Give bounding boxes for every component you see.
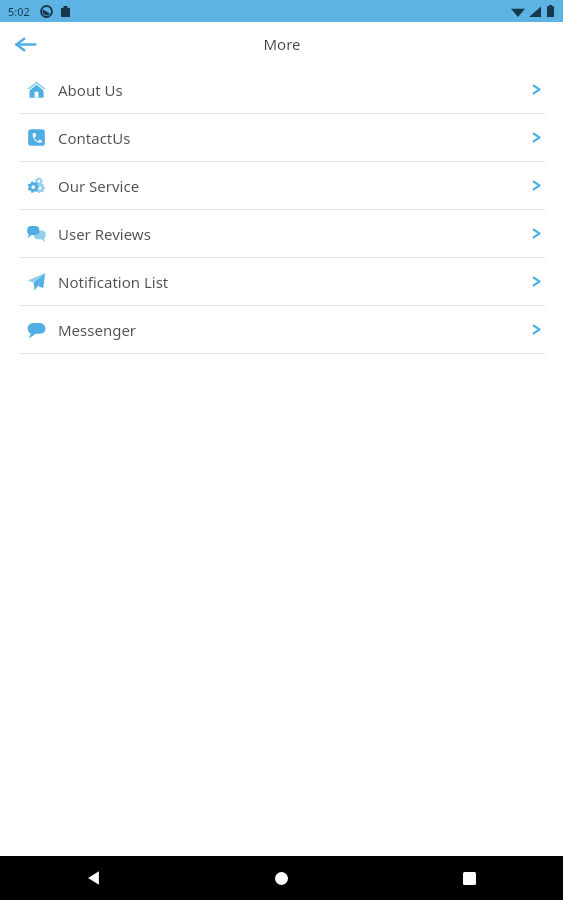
button[interactable]: Our Service — [0, 162, 563, 210]
button[interactable]: Home — [187, 856, 375, 900]
staticText: More — [263, 34, 301, 54]
staticText: Messenger — [58, 320, 137, 340]
staticText: Notification List — [58, 272, 169, 292]
button[interactable]: Recents — [375, 856, 563, 900]
button[interactable]: Back — [0, 22, 50, 66]
staticText: Our Service — [58, 176, 140, 196]
staticText: User Reviews — [58, 224, 151, 244]
button[interactable]: ContactUs — [0, 114, 563, 162]
button[interactable]: Notification List — [0, 258, 563, 306]
staticText: 5:02 — [8, 4, 30, 19]
staticText: ContactUs — [58, 128, 131, 148]
button[interactable]: User Reviews — [0, 210, 563, 258]
button[interactable]: Messenger — [0, 306, 563, 354]
staticText: About Us — [58, 80, 123, 100]
button[interactable]: Back — [0, 856, 187, 900]
button[interactable]: About Us — [0, 66, 563, 114]
